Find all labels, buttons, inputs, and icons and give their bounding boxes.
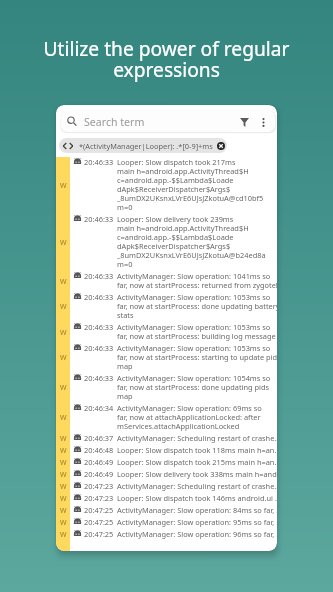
staticText: 20:46:34 <box>84 403 114 413</box>
staticText: 20:47:25 <box>84 517 114 527</box>
button[interactable]: W <box>56 433 277 445</box>
button[interactable]: *(ActivityManager|Looper): .*[0-9]+ms <box>59 138 227 153</box>
staticText: Utilize the power of regular expressions <box>28 35 305 82</box>
button[interactable]: Filter <box>235 113 253 131</box>
button[interactable]: W <box>56 517 277 529</box>
staticText: W <box>60 530 67 540</box>
staticText: *(ActivityManager|Looper): .*[0-9]+ms <box>79 141 213 151</box>
button[interactable]: Clear filter <box>215 140 226 151</box>
button[interactable]: W <box>56 493 277 505</box>
staticText: Looper: Slow dispatch took 215ms main h=… <box>117 457 277 467</box>
staticText: Looper: Slow dispatch took 118ms main h=… <box>117 445 277 455</box>
staticText: ActivityManager: Scheduling restart of c… <box>117 481 277 491</box>
staticText: ActivityManager: Slow operation: 1053ms … <box>117 292 277 320</box>
staticText: W <box>60 302 67 312</box>
button[interactable]: W <box>56 322 277 343</box>
button[interactable]: W <box>56 505 277 517</box>
staticText: 20:46:33 <box>84 157 114 167</box>
button[interactable]: W <box>56 214 277 271</box>
staticText: ActivityManager: Slow operation: 1053ms … <box>117 343 277 371</box>
button[interactable]: W <box>56 157 277 214</box>
button[interactable]: Search term <box>61 111 275 132</box>
button[interactable]: W <box>56 529 277 541</box>
staticText: ActivityManager: Scheduling restart of c… <box>117 433 277 443</box>
button[interactable]: W <box>56 343 277 373</box>
staticText: ActivityManager: Slow operation: 1054ms … <box>117 373 271 401</box>
staticText: W <box>60 328 67 338</box>
button[interactable]: More options <box>254 113 272 131</box>
staticText: ActivityManager: Slow operation: 69ms so… <box>117 403 262 431</box>
staticText: 20:46:33 <box>84 373 114 383</box>
staticText: W <box>60 434 67 444</box>
staticText: W <box>60 494 67 504</box>
button[interactable]: W <box>56 373 277 403</box>
staticText: 20:46:33 <box>84 292 114 302</box>
staticText: ActivityManager: Slow operation: 96ms so… <box>117 529 277 539</box>
staticText: 20:46:33 <box>84 271 114 281</box>
staticText: Looper: Slow dispatch took 217ms main h=… <box>117 157 264 212</box>
button[interactable]: W <box>56 292 277 322</box>
staticText: W <box>60 470 67 480</box>
staticText: 20:47:25 <box>84 505 114 515</box>
staticText: W <box>60 458 67 468</box>
staticText: 20:46:37 <box>84 433 114 443</box>
staticText: W <box>60 238 67 248</box>
button[interactable]: W <box>56 457 277 469</box>
staticText: W <box>60 353 67 363</box>
button[interactable]: W <box>56 481 277 493</box>
staticText: Looper: Slow dispatch took 146ms android… <box>117 493 277 503</box>
staticText: W <box>60 181 67 191</box>
staticText: 20:46:33 <box>84 214 114 224</box>
staticText: 20:47:23 <box>84 481 114 491</box>
staticText: W <box>60 518 67 528</box>
staticText: ActivityManager: Slow operation: 95ms so… <box>117 517 277 527</box>
button[interactable]: W <box>56 445 277 457</box>
staticText: W <box>60 446 67 456</box>
staticText: W <box>60 383 67 393</box>
staticText: 20:46:49 <box>84 469 114 479</box>
button[interactable]: W <box>56 469 277 481</box>
staticText: Search term <box>84 115 145 129</box>
staticText: W <box>60 482 67 492</box>
staticText: W <box>60 506 67 516</box>
staticText: 20:46:48 <box>84 445 114 455</box>
staticText: ActivityManager: Slow operation: 1041ms … <box>117 271 277 290</box>
button[interactable]: W <box>56 271 277 292</box>
staticText: W <box>60 277 67 287</box>
staticText: Looper: Slow delivery took 239ms main h=… <box>117 214 266 269</box>
staticText: 20:46:33 <box>84 343 114 353</box>
staticText: 20:47:25 <box>84 529 114 539</box>
staticText: W <box>60 413 67 423</box>
button[interactable]: W <box>56 403 277 433</box>
staticText: Looper: Slow delivery took 338ms main h=… <box>117 469 277 479</box>
staticText: 20:47:23 <box>84 493 114 503</box>
staticText: ActivityManager: Slow operation: 84ms so… <box>117 505 277 515</box>
staticText: 20:46:33 <box>84 322 114 332</box>
staticText: 20:46:49 <box>84 457 114 467</box>
staticText: ActivityManager: Slow operation: 1053ms … <box>117 322 276 341</box>
